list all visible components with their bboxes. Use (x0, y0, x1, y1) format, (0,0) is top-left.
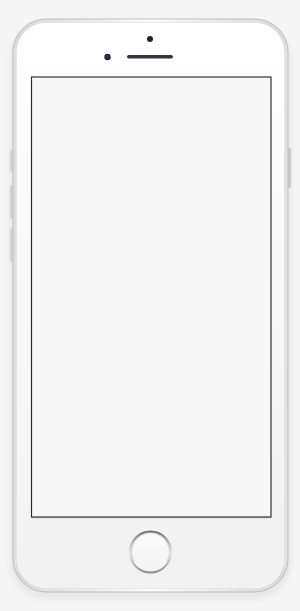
button[interactable]: iPhone device mockup (0, 0, 300, 611)
